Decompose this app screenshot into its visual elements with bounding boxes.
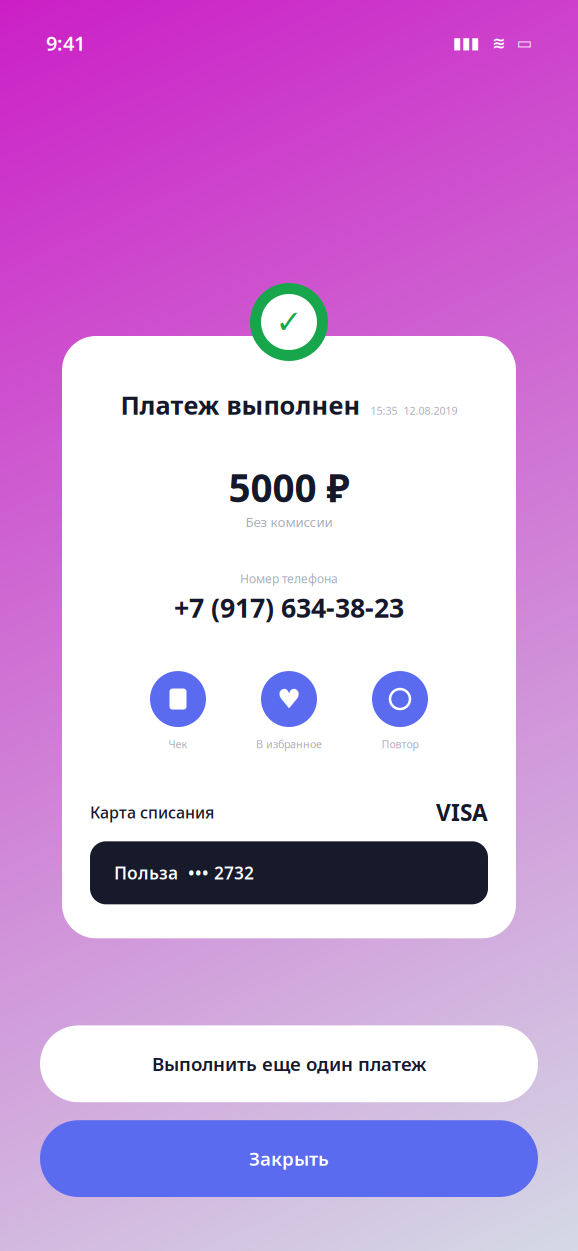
staticText: Номер телефона [240,571,338,587]
button[interactable]: Чек [150,671,206,751]
staticText: В избранное [256,737,322,751]
staticText: 15:35 12.08.2019 [370,403,457,418]
staticText: Чек [168,737,187,751]
button[interactable]: Повтор [372,671,428,751]
staticText: 5000 ₽ [228,462,349,513]
staticText: Польза ••• 2732 [114,861,254,884]
staticText: ✓ [275,304,302,340]
staticText: VISA [436,797,488,827]
staticText: +7 (917) 634-38-23 [174,590,404,625]
staticText: Выполнить еще один платеж [152,1051,426,1076]
staticText: Закрыть [249,1146,329,1171]
button[interactable]: Закрыть [40,1120,538,1197]
staticText: Карта списания [90,802,214,823]
staticText: Повтор [381,737,418,751]
button[interactable]: Выполнить еще один платеж [40,1025,538,1102]
staticText: Платеж выполнен [120,388,360,422]
staticText: 9:41 [46,30,85,56]
staticText: ▮▮▮ ≋ ▭ [453,34,532,52]
button[interactable]: ♥ [256,671,322,751]
staticText: Без комиссии [245,513,332,531]
staticText: ♥ [277,684,301,714]
